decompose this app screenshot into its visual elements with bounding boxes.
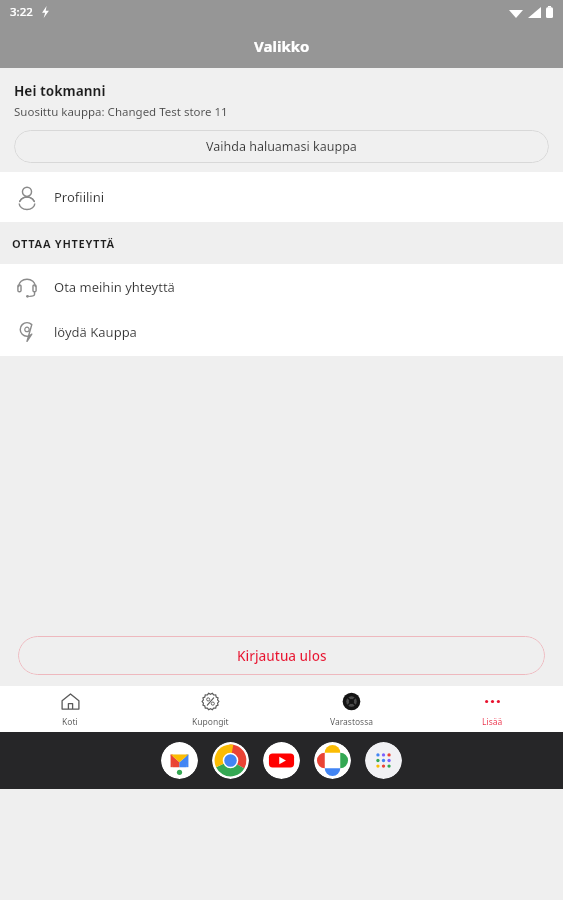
staticText: OTTAA YHTEYTTÄ	[12, 236, 115, 251]
button[interactable]: Chrome	[212, 742, 249, 779]
staticText: Suosittu kauppa: Changed Test store 11	[14, 104, 228, 120]
staticText: Profiilini	[54, 188, 105, 206]
staticText: Varastossa	[330, 716, 374, 728]
staticText: Ota meihin yhteyttä	[54, 278, 175, 296]
button[interactable]: Profiilini	[0, 172, 563, 222]
button[interactable]: Kupongit	[140, 691, 281, 728]
button[interactable]: löydä Kauppa	[0, 309, 563, 354]
button[interactable]: Ota meihin yhteyttä	[0, 264, 563, 309]
button[interactable]: Lisää	[422, 691, 563, 728]
button[interactable]: YouTube	[263, 742, 300, 779]
staticText: Valikko	[254, 36, 310, 56]
staticText: Lisää	[482, 716, 503, 728]
staticText: Koti	[62, 716, 78, 728]
staticText: Vaihda haluamasi kauppa	[206, 138, 357, 155]
button[interactable]: Photos	[314, 742, 351, 779]
staticText: Hei tokmanni	[14, 82, 106, 100]
staticText: 3:22	[10, 4, 33, 20]
button[interactable]: Vaihda haluamasi kauppa	[14, 130, 549, 163]
staticText: Kupongit	[192, 716, 229, 728]
staticText: löydä Kauppa	[54, 323, 137, 341]
staticText: Kirjautua ulos	[237, 647, 327, 665]
button[interactable]: Koti	[0, 691, 140, 728]
button[interactable]: Gmail	[161, 742, 198, 779]
button[interactable]: Varastossa	[281, 691, 422, 728]
button[interactable]: All apps	[365, 742, 402, 779]
button[interactable]: Kirjautua ulos	[18, 636, 545, 675]
